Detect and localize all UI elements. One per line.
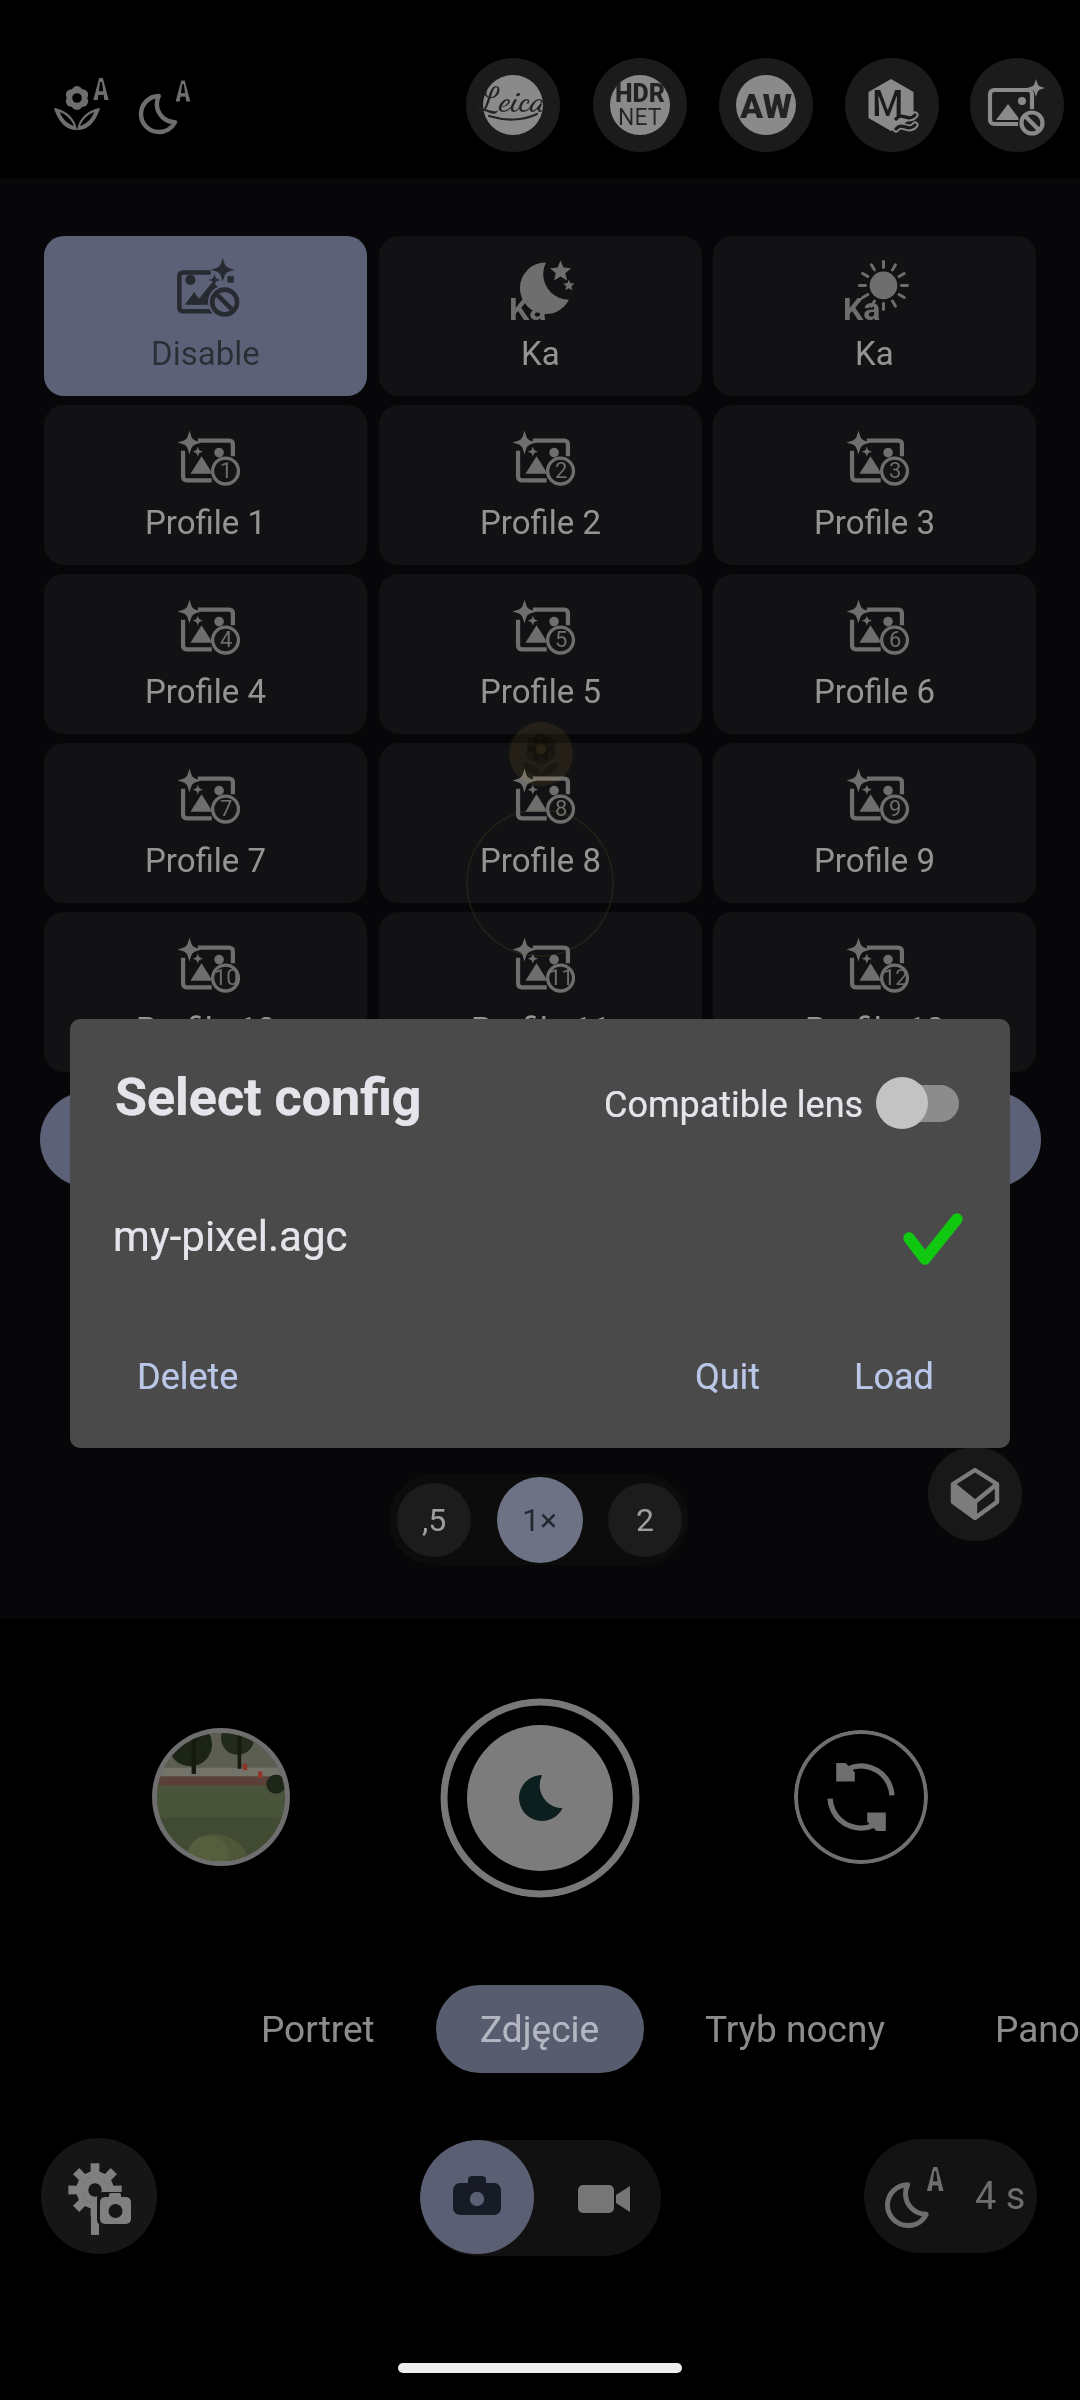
staticText: 11 [549,965,574,991]
staticText: Profile 12 [805,1010,945,1049]
button[interactable]: Ka [713,236,1036,396]
staticText: Profile 7 [145,841,267,880]
staticText: Ka [509,290,547,328]
button[interactable]: 1× [497,1477,583,1563]
staticText: 8 [555,796,568,822]
staticText: Profile 8 [480,841,602,880]
staticText: 1 [220,458,233,484]
staticText: Ka [855,334,894,373]
staticText: 10 [214,965,239,991]
staticText: 3 [889,458,902,484]
staticText: Compatible lens [604,1084,864,1126]
staticText: Profile 9 [814,841,936,880]
staticText: 4 s [975,2174,1026,2219]
staticText: 1× [522,1501,558,1539]
staticText: 2 [555,458,568,484]
staticText: 2 [636,1501,654,1539]
staticText: 9 [889,796,902,822]
staticText: Pano [995,2008,1080,2051]
button[interactable]: 8 [379,743,702,903]
button[interactable]: 4 s [864,2139,1037,2253]
staticText: Profile 2 [480,503,602,542]
button[interactable]: Load [854,1344,934,1410]
button[interactable]: Night mode auto [130,62,218,150]
staticText: Profile 11 [471,1010,611,1049]
button[interactable]: 9 [713,743,1036,903]
button[interactable]: 12 [713,912,1036,1072]
button[interactable]: Quit [695,1344,761,1410]
staticText: 12 [883,965,908,991]
button[interactable]: Photo mode [420,2140,534,2254]
staticText: Profile 5 [480,672,602,711]
button[interactable]: 11 [379,912,702,1072]
staticText: M [872,83,904,125]
button[interactable]: Ka [379,236,702,396]
staticText: my-pixel.agc [113,1212,348,1261]
staticText: Profile 3 [814,503,936,542]
staticText: Select config [115,1067,422,1128]
staticText: Profile 4 [145,672,267,711]
button[interactable]: Disable [44,236,367,396]
button[interactable]: 10 [44,912,367,1072]
staticText: Disable [151,334,260,373]
staticText: 6 [889,627,902,653]
button[interactable]: Delete [137,1344,239,1410]
button[interactable]: Leica [466,58,560,152]
button[interactable]: Auto white balance [719,58,813,152]
staticText: Profile 10 [136,1010,276,1049]
button[interactable]: 6 [713,574,1036,734]
button[interactable]: 7 [44,743,367,903]
staticText: NET [618,104,662,131]
staticText: Delete [137,1356,239,1398]
button[interactable]: ,5 [397,1483,471,1557]
button[interactable]: AI disabled [970,58,1064,152]
staticText: 5 [555,627,568,653]
button[interactable]: Compatible lens toggle [866,1059,986,1159]
staticText: Ka [843,290,881,328]
button[interactable]: Zdjęcie [436,1985,644,2073]
staticText: Profile 6 [814,672,936,711]
staticText: AW [740,86,793,126]
staticText: Quit [695,1356,761,1398]
staticText: Leica [479,80,546,121]
button[interactable]: 5 [379,574,702,734]
button[interactable]: Last photo [152,1728,290,1866]
button[interactable]: Macro auto [48,62,136,150]
staticText: Portret [261,2008,375,2051]
staticText: 4 [220,627,233,653]
button[interactable]: Shutter [440,1698,640,1898]
button[interactable]: Video mode [547,2140,661,2254]
button[interactable]: HDR NET [593,58,687,152]
button[interactable]: 2 [608,1483,682,1557]
staticText: ,5 [422,1501,447,1539]
button[interactable]: 3 [713,405,1036,565]
button[interactable]: 2 [379,405,702,565]
button[interactable]: Motion [845,58,939,152]
button[interactable]: 4 [44,574,367,734]
button[interactable]: Pano [995,1985,1080,2073]
button[interactable]: Settings [41,2138,157,2254]
staticText: HDR [615,79,666,108]
button[interactable]: Tryb nocny [705,1985,885,2073]
staticText: 7 [220,796,233,822]
button[interactable]: Switch camera [794,1730,928,1864]
staticText: Zdjęcie [480,2008,600,2051]
staticText: Load [854,1356,934,1398]
staticText: Ka [521,334,560,373]
button[interactable]: Portret [261,1985,375,2073]
button[interactable]: Lens picker [928,1447,1022,1541]
staticText: Tryb nocny [705,2008,885,2051]
button[interactable]: 1 [44,405,367,565]
staticText: Profile 1 [145,503,267,542]
